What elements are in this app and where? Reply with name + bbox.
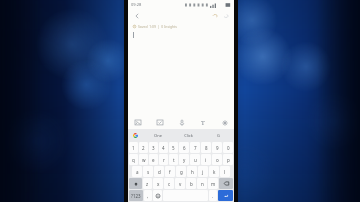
staticText: s bbox=[147, 169, 150, 175]
button[interactable]: t bbox=[169, 154, 178, 165]
button[interactable]: 9 bbox=[212, 142, 222, 153]
button[interactable]: b bbox=[186, 178, 196, 189]
button[interactable]: g bbox=[176, 166, 186, 177]
button[interactable]: m bbox=[208, 178, 218, 189]
button[interactable]: Undo bbox=[209, 10, 220, 21]
button[interactable]: 5 bbox=[169, 142, 178, 153]
staticText: l bbox=[224, 169, 226, 175]
staticText: p bbox=[227, 157, 230, 163]
staticText: y bbox=[183, 157, 186, 163]
staticText: ?123 bbox=[131, 193, 141, 199]
button[interactable]: d bbox=[154, 166, 164, 177]
button[interactable]: s bbox=[143, 166, 153, 177]
staticText: w bbox=[142, 157, 146, 163]
staticText: 1 bbox=[132, 145, 135, 151]
button[interactable]: x bbox=[153, 178, 163, 189]
staticText: . bbox=[212, 193, 214, 199]
staticText: 3 bbox=[152, 145, 155, 151]
staticText: j bbox=[202, 169, 204, 175]
staticText: u bbox=[194, 157, 197, 163]
staticText: n bbox=[201, 181, 204, 187]
staticText: m bbox=[211, 181, 216, 187]
staticText: z bbox=[146, 181, 149, 187]
staticText: o bbox=[216, 157, 219, 163]
button[interactable]: Redo bbox=[220, 10, 231, 21]
button[interactable]: u bbox=[190, 154, 200, 165]
button[interactable]: More options bbox=[219, 117, 230, 128]
button[interactable]: 6 bbox=[179, 142, 189, 153]
button[interactable]: Voice recording bbox=[176, 117, 187, 128]
button[interactable]: o bbox=[212, 154, 222, 165]
staticText: t bbox=[173, 157, 175, 163]
button[interactable]: n bbox=[197, 178, 207, 189]
staticText: 6 bbox=[183, 145, 186, 151]
button[interactable]: Google bbox=[129, 130, 142, 141]
button[interactable]: 2 bbox=[139, 142, 148, 153]
staticText: b bbox=[190, 181, 193, 187]
staticText: 2 bbox=[142, 145, 145, 151]
staticText: One bbox=[154, 133, 162, 138]
staticText: , bbox=[147, 193, 149, 199]
button[interactable]: v bbox=[175, 178, 185, 189]
staticText: h bbox=[191, 169, 194, 175]
button[interactable]: G bbox=[203, 130, 233, 141]
staticText: 5 bbox=[172, 145, 175, 151]
staticText: G bbox=[217, 133, 220, 138]
button[interactable]: l bbox=[220, 166, 230, 177]
button[interactable]: z bbox=[143, 178, 152, 189]
button[interactable]: Emoji bbox=[153, 190, 162, 201]
button[interactable]: 1 bbox=[129, 142, 138, 153]
staticText: 7 bbox=[194, 145, 197, 151]
button[interactable]: k bbox=[209, 166, 219, 177]
staticText: 0 bbox=[227, 145, 230, 151]
staticText: 4 bbox=[162, 145, 165, 151]
button[interactable]: c bbox=[164, 178, 174, 189]
button[interactable]: Backspace bbox=[219, 178, 233, 189]
staticText: g bbox=[180, 169, 183, 175]
staticText: v bbox=[179, 181, 182, 187]
button[interactable]: p bbox=[223, 154, 233, 165]
button[interactable]: 7 bbox=[190, 142, 200, 153]
button[interactable]: ?123 bbox=[129, 190, 143, 201]
button[interactable]: j bbox=[198, 166, 208, 177]
staticText: d bbox=[158, 169, 161, 175]
button[interactable]: i bbox=[201, 154, 211, 165]
button[interactable]: , bbox=[144, 190, 152, 201]
staticText: 8 bbox=[205, 145, 208, 151]
button[interactable]: 3 bbox=[149, 142, 158, 153]
staticText: q bbox=[132, 157, 135, 163]
button[interactable]: Enter bbox=[218, 190, 233, 201]
button[interactable]: q bbox=[129, 154, 138, 165]
button[interactable]: Back bbox=[131, 10, 142, 21]
button[interactable]: f bbox=[165, 166, 175, 177]
button[interactable]: h bbox=[187, 166, 197, 177]
staticText: Saved 1:09 | 0 Insights bbox=[138, 24, 177, 29]
staticText: k bbox=[213, 169, 216, 175]
staticText: T bbox=[201, 119, 205, 127]
staticText: 09:28 bbox=[131, 2, 142, 7]
button[interactable]: e bbox=[149, 154, 158, 165]
button[interactable]: Shift bbox=[129, 178, 142, 189]
button[interactable]: One bbox=[142, 130, 173, 141]
button[interactable]: 4 bbox=[159, 142, 168, 153]
button[interactable]: Click bbox=[173, 130, 203, 141]
staticText: 9 bbox=[216, 145, 219, 151]
staticText: i bbox=[205, 157, 207, 163]
button[interactable]: Add image bbox=[132, 117, 143, 128]
button[interactable]: 8 bbox=[201, 142, 211, 153]
button[interactable]: T bbox=[197, 117, 208, 128]
staticText: x bbox=[157, 181, 160, 187]
staticText: Click bbox=[184, 133, 193, 138]
button[interactable]: y bbox=[179, 154, 189, 165]
staticText: c bbox=[168, 181, 171, 187]
button[interactable]: r bbox=[159, 154, 168, 165]
staticText: f bbox=[169, 169, 171, 175]
button[interactable]: Checkboxes bbox=[154, 117, 165, 128]
staticText: a bbox=[136, 169, 139, 175]
button[interactable]: . bbox=[209, 190, 217, 201]
button[interactable]: 0 bbox=[223, 142, 233, 153]
button[interactable]: a bbox=[132, 166, 142, 177]
button[interactable]: w bbox=[139, 154, 148, 165]
